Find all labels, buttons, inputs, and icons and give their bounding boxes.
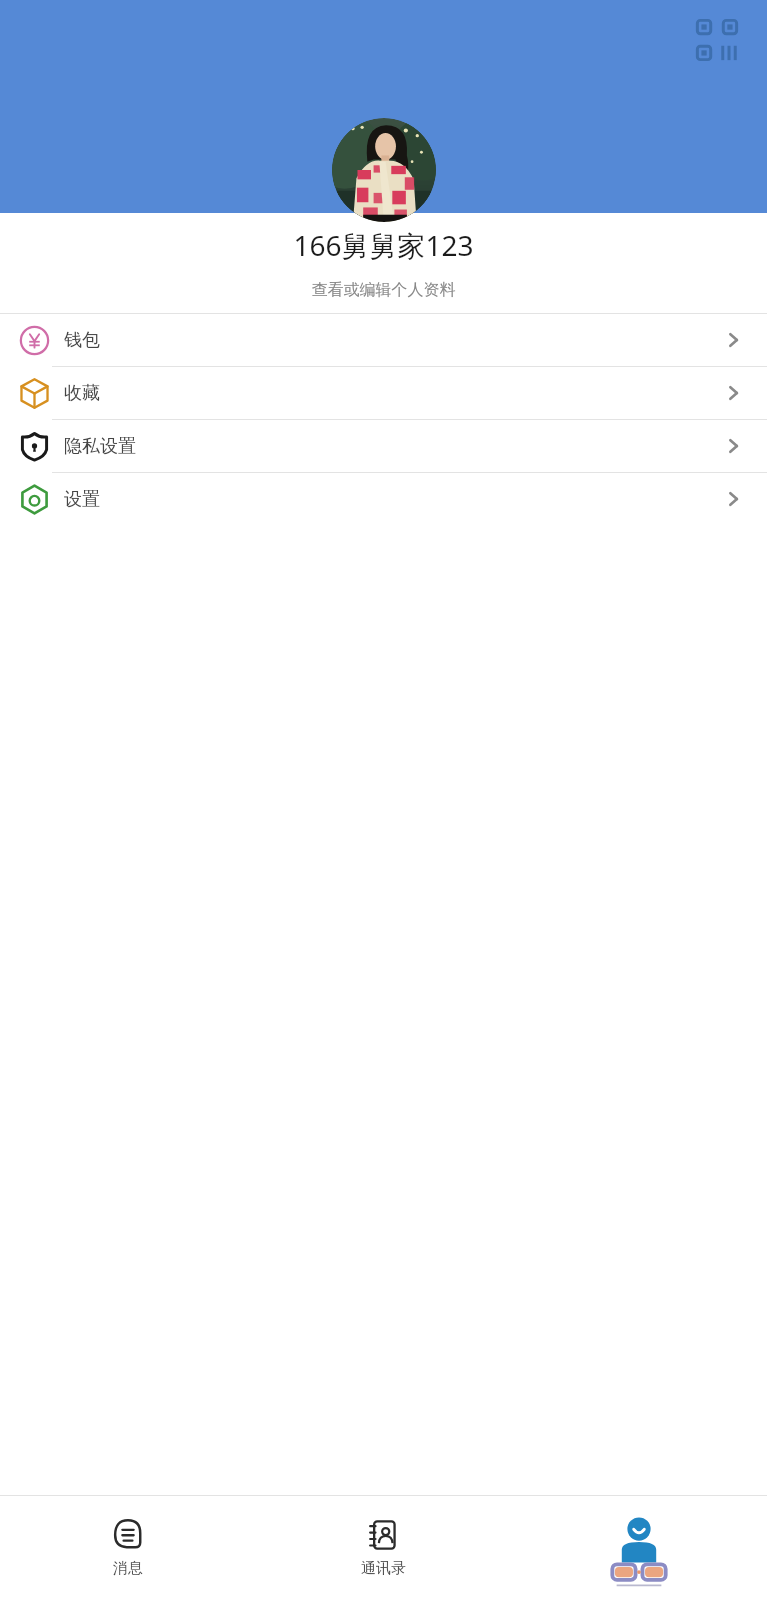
staticText: 166舅舅家123 (0, 226, 767, 264)
button[interactable]: QR code (693, 16, 741, 64)
button[interactable]: 设置 (0, 473, 767, 525)
button[interactable]: 收藏 (0, 367, 767, 419)
staticText: 隐私设置 (64, 435, 136, 458)
button[interactable]: 通讯录 (255, 1496, 511, 1600)
button[interactable]: 隐私设置 (0, 420, 767, 472)
button[interactable]: 查看或编辑个人资料 (0, 280, 767, 300)
button[interactable]: 钱包 (0, 314, 767, 366)
button[interactable]: Me (511, 1496, 767, 1600)
staticText: 钱包 (64, 329, 100, 352)
staticText: 查看或编辑个人资料 (0, 280, 767, 300)
staticText: 通讯录 (361, 1559, 406, 1578)
button[interactable]: 消息 (0, 1496, 255, 1600)
staticText: 设置 (64, 488, 100, 511)
staticText: 消息 (113, 1559, 143, 1578)
staticText: 收藏 (64, 382, 100, 405)
button[interactable]: Profile photo (332, 118, 436, 222)
